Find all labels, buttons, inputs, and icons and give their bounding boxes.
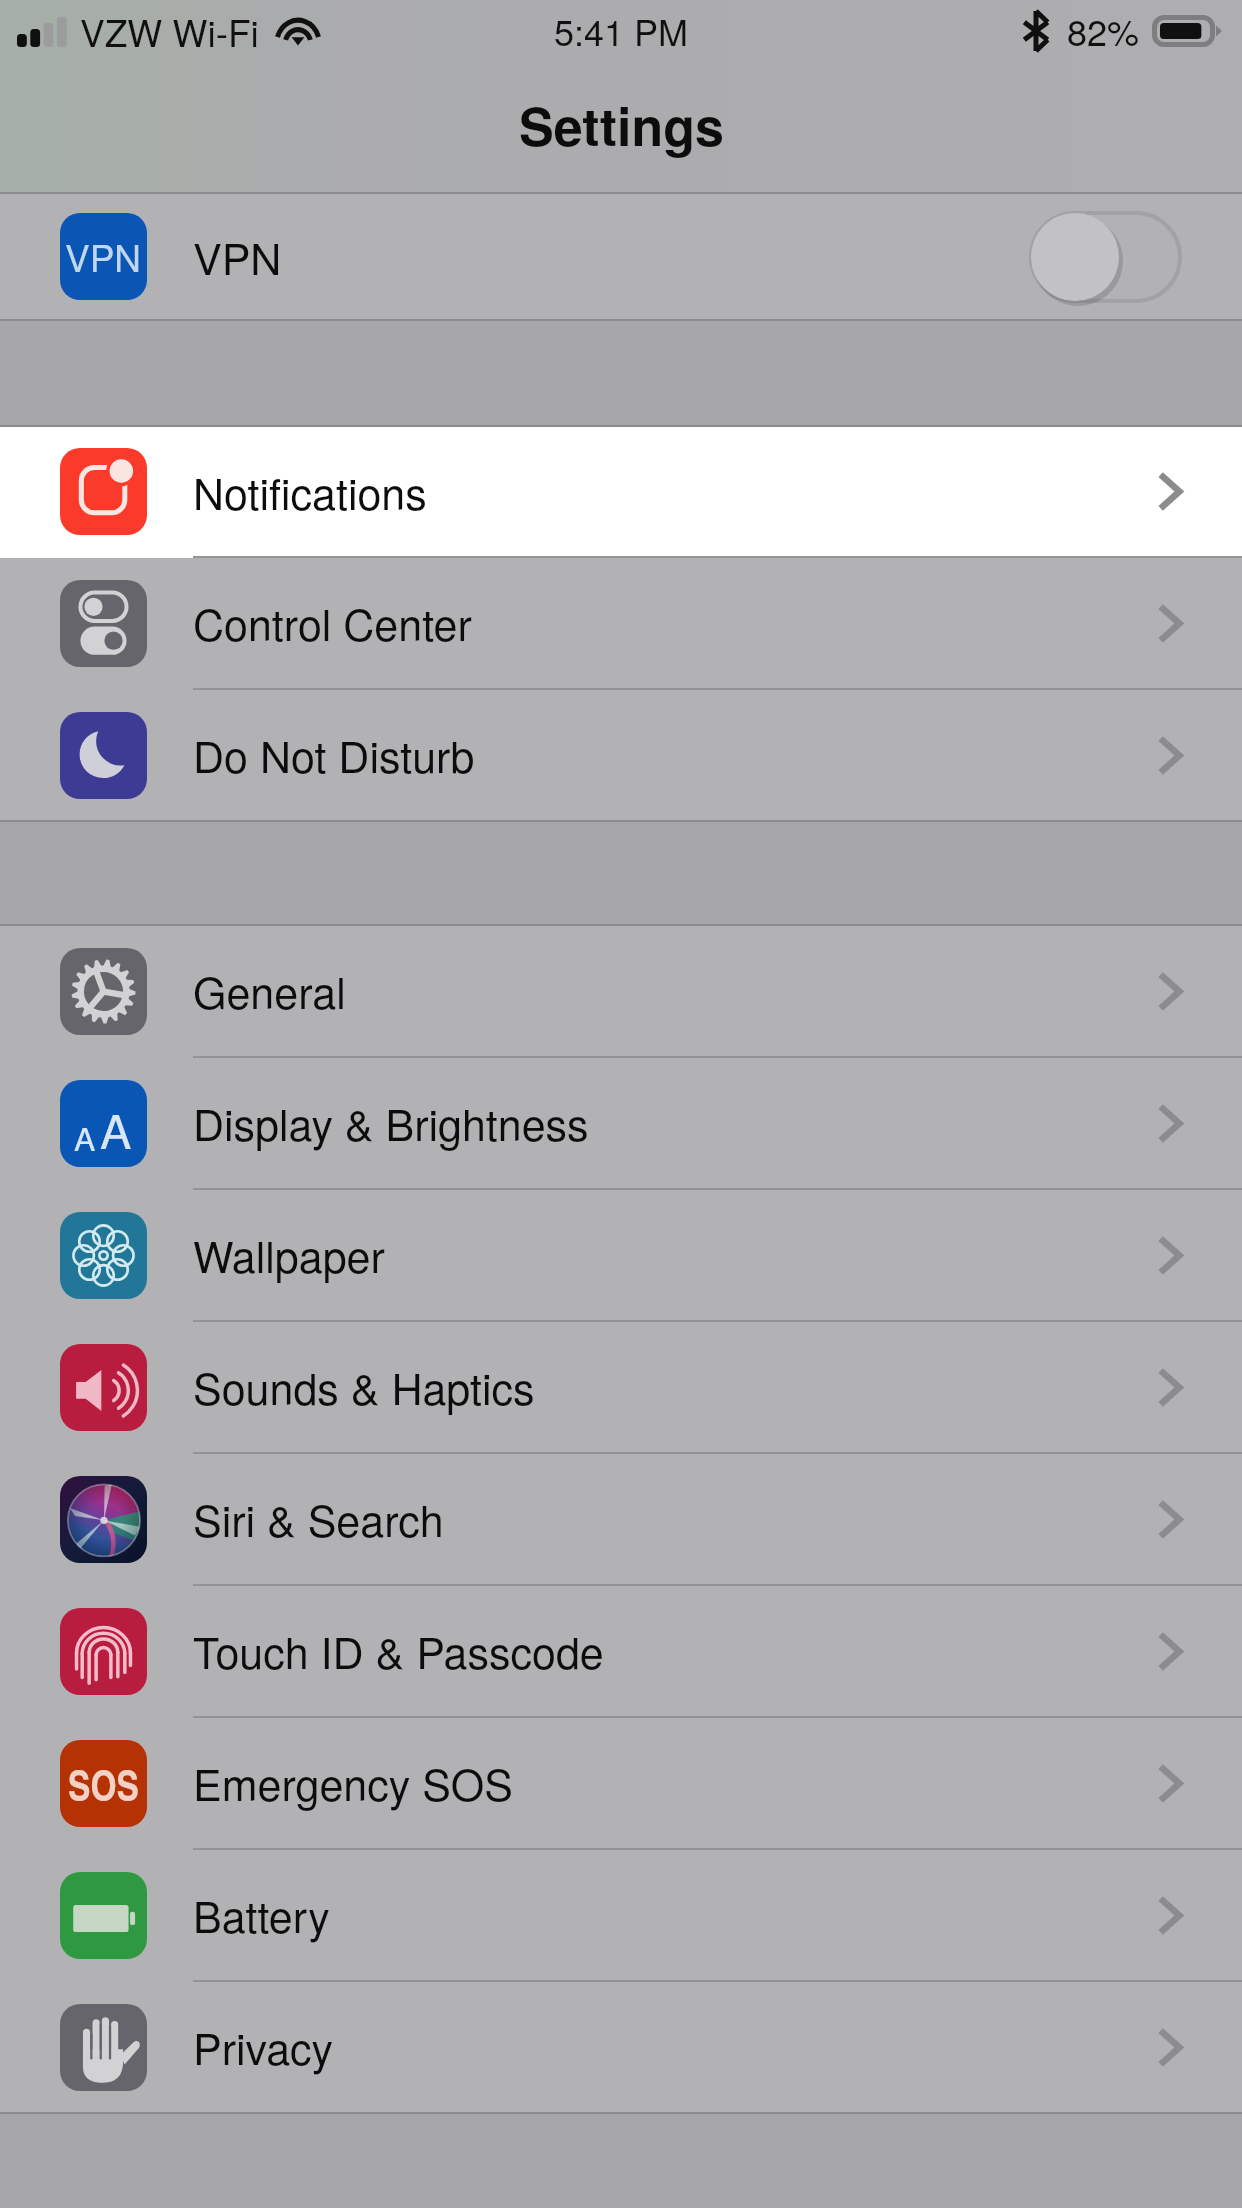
button[interactable]: Siri & Search [0,1454,1242,1584]
button[interactable]: VPN toggle, off [1029,211,1182,303]
staticText: Notifications [193,461,427,523]
button[interactable]: Control Center [0,558,1242,688]
button[interactable]: Do Not Disturb [0,690,1242,820]
staticText: Wallpaper [193,1224,385,1286]
staticText: 5:41 PM [554,5,689,57]
staticText: Control Center [193,592,472,654]
staticText: Emergency SOS [193,1752,514,1814]
staticText: SOS [68,1755,140,1813]
staticText: A [100,1095,132,1162]
staticText: VPN [193,226,282,288]
staticText: Touch ID & Passcode [193,1620,604,1682]
button[interactable]: Touch ID & Passcode [0,1586,1242,1716]
staticText: Sounds & Haptics [193,1356,535,1418]
staticText: Privacy [193,2016,334,2078]
button[interactable]: Notifications [0,427,1242,556]
staticText: General [193,960,346,1022]
staticText: Siri & Search [193,1488,444,1550]
staticText: Do Not Disturb [193,724,475,786]
button[interactable]: Privacy [0,1982,1242,2112]
button[interactable]: Wallpaper [0,1190,1242,1320]
button[interactable]: General [0,926,1242,1056]
staticText: Display & Brightness [193,1092,589,1154]
button[interactable]: SOS [0,1718,1242,1848]
button[interactable]: Battery [0,1850,1242,1980]
staticText: Settings [519,87,724,161]
button[interactable]: VPN [0,194,1242,319]
staticText: 82% [1067,5,1140,57]
staticText: VZW Wi-Fi [80,5,259,58]
button[interactable]: A [0,1058,1242,1188]
staticText: Battery [193,1884,330,1946]
staticText: A [74,1114,96,1160]
staticText: VPN [65,230,142,283]
button[interactable]: Sounds & Haptics [0,1322,1242,1452]
